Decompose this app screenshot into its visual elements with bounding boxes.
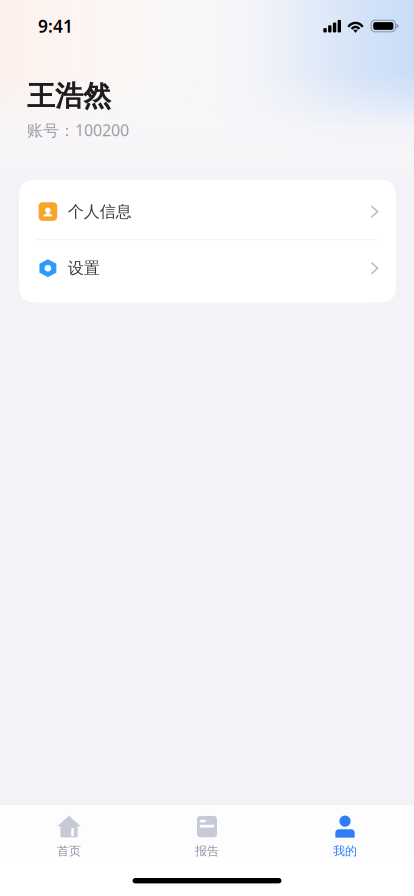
staticText: 首页 xyxy=(57,844,81,858)
button[interactable]: 我的 xyxy=(276,802,414,860)
staticText: 设置 xyxy=(68,258,100,278)
staticText: 个人信息 xyxy=(68,202,132,221)
staticText: 9:41 xyxy=(38,14,73,37)
button[interactable]: 首页 xyxy=(0,802,138,860)
staticText: 报告 xyxy=(195,844,219,858)
staticText: 我的 xyxy=(333,844,357,858)
staticText: 账号：100200 xyxy=(27,119,129,141)
button[interactable]: 个人信息 xyxy=(19,180,396,239)
staticText: 王浩然 xyxy=(27,79,111,113)
button[interactable]: 设置 xyxy=(19,240,396,303)
button[interactable]: 报告 xyxy=(138,802,276,860)
